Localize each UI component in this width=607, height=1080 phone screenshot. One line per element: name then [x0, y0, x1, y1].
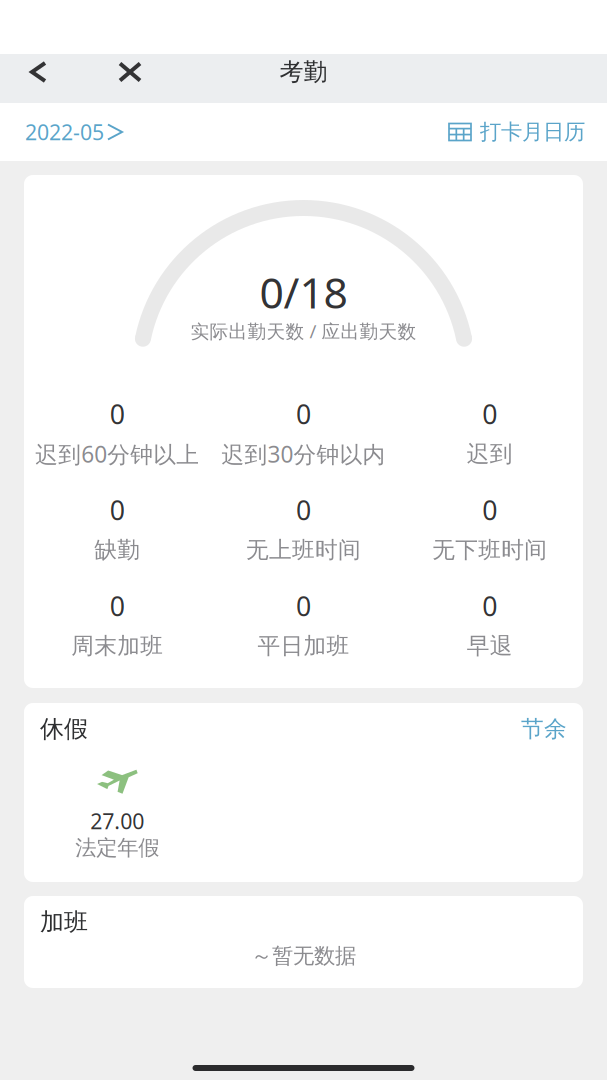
button[interactable]: 2022-05: [25, 118, 126, 146]
staticText: 无下班时间: [432, 536, 547, 564]
staticText: 周末加班: [71, 632, 163, 660]
staticText: 迟到60分钟以上: [35, 439, 199, 469]
staticText: 0: [482, 492, 497, 528]
staticText: 0: [296, 396, 311, 432]
staticText: 缺勤: [94, 536, 140, 564]
staticText: 无上班时间: [246, 536, 361, 564]
staticText: 加班: [40, 907, 88, 937]
staticText: 0: [110, 492, 125, 528]
staticText: 考勤: [279, 57, 327, 87]
button[interactable]: Close: [106, 54, 154, 90]
button[interactable]: 打卡月日历: [449, 119, 585, 145]
button[interactable]: Back: [16, 54, 61, 90]
staticText: 0: [296, 588, 311, 624]
staticText: 0: [110, 588, 125, 624]
staticText: 休假: [40, 714, 88, 744]
staticText: 0: [482, 396, 497, 432]
staticText: 0: [110, 396, 125, 432]
staticText: 平日加班: [257, 632, 349, 660]
staticText: 0/18: [259, 264, 347, 320]
staticText: 实际出勤天数 / 应出勤天数: [190, 319, 416, 343]
staticText: 法定年假: [75, 835, 159, 861]
staticText: 27.00: [90, 807, 144, 835]
staticText: ～暂无数据: [251, 943, 356, 969]
staticText: 打卡月日历: [480, 119, 585, 145]
staticText: 迟到: [467, 440, 513, 468]
button[interactable]: 节余: [521, 717, 567, 741]
staticText: 迟到30分钟以内: [221, 439, 385, 469]
staticText: 节余: [521, 715, 567, 743]
staticText: 0: [296, 492, 311, 528]
staticText: 2022-05: [25, 118, 104, 146]
staticText: 早退: [467, 632, 513, 660]
staticText: 0: [482, 588, 497, 624]
